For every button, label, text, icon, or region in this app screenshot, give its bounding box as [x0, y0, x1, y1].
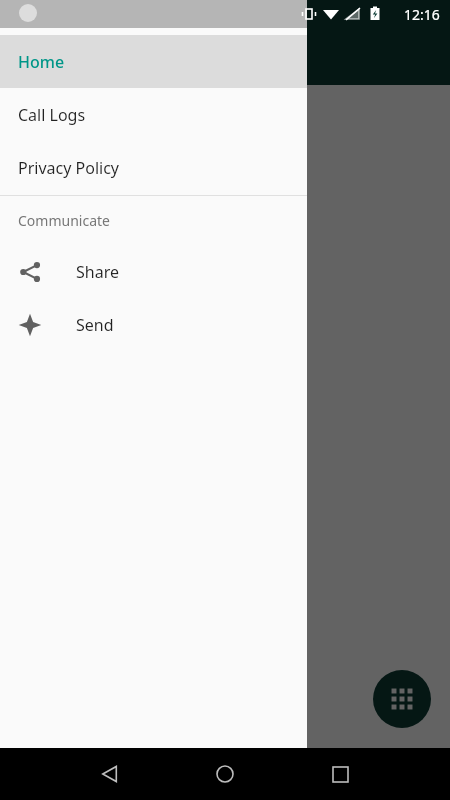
button[interactable]: Home [0, 35, 307, 88]
staticText: Privacy Policy [18, 157, 119, 179]
staticText: Send [76, 314, 114, 336]
button[interactable]: Call Logs [0, 88, 307, 141]
staticText: Communicate [18, 211, 110, 230]
button[interactable]: Privacy Policy [0, 141, 307, 194]
staticText: Call Logs [18, 104, 86, 126]
button[interactable]: Back [86, 750, 134, 798]
button[interactable]: Dialpad [373, 670, 431, 728]
button[interactable]: Recent apps [316, 750, 364, 798]
staticText: Home [18, 51, 65, 73]
staticText: 12:16 [404, 5, 440, 24]
button[interactable]: Send [0, 298, 307, 351]
button[interactable]: Share [0, 245, 307, 298]
button[interactable]: Home [201, 750, 249, 798]
staticText: Share [76, 261, 119, 283]
